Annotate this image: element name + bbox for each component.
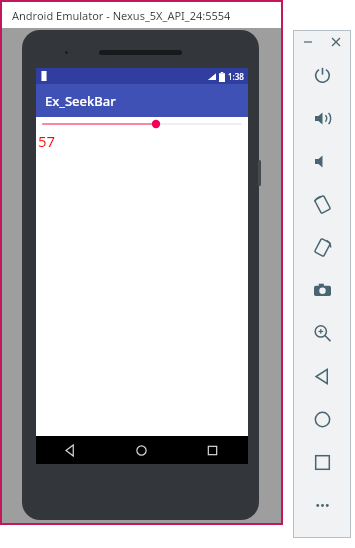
button[interactable]: Zoom	[293, 312, 351, 355]
staticText: 1:38	[228, 71, 244, 82]
button[interactable]: Minimize	[298, 32, 318, 52]
button[interactable]: Seek bar, value 57	[36, 117, 248, 131]
button[interactable]: Home	[293, 398, 351, 441]
staticText: Android Emulator - Nexus_5X_API_24:5554	[12, 8, 231, 23]
button[interactable]: Take screenshot	[293, 269, 351, 312]
button[interactable]: Rotate left	[293, 183, 351, 226]
staticText: 57	[38, 131, 56, 151]
button[interactable]: Home	[106, 436, 177, 464]
button[interactable]: Ex_SeekBar	[36, 84, 248, 117]
button[interactable]: Volume up	[293, 97, 351, 140]
button[interactable]: More	[293, 484, 351, 527]
button[interactable]: Rotate right	[293, 226, 351, 269]
button[interactable]: Recents	[177, 436, 248, 464]
button[interactable]: Back	[36, 436, 106, 464]
button[interactable]: Power	[293, 54, 351, 97]
button[interactable]: Back	[293, 355, 351, 398]
staticText: Ex_SeekBar	[45, 92, 116, 110]
button[interactable]: Volume down	[293, 140, 351, 183]
button[interactable]: Close	[326, 32, 346, 52]
button[interactable]: Overview	[293, 441, 351, 484]
